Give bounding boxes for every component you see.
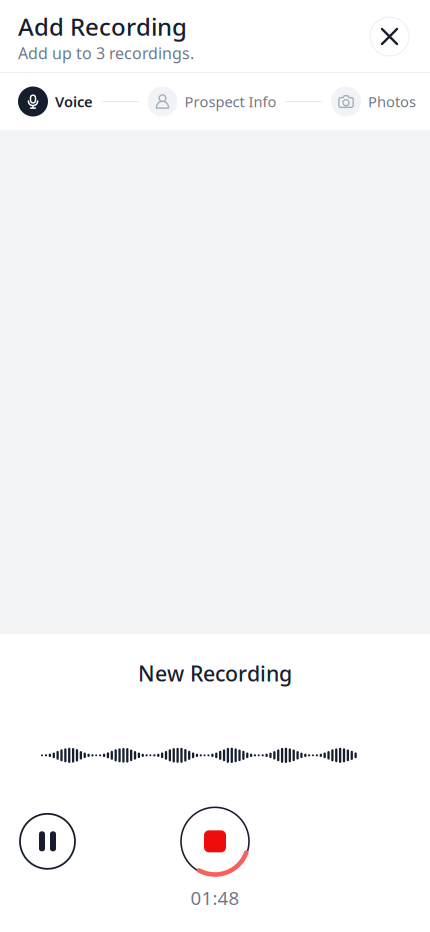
- button[interactable]: Voice: [18, 86, 93, 116]
- button[interactable]: Stop recording: [181, 807, 249, 875]
- staticText: 01:48: [190, 885, 239, 910]
- button[interactable]: Photos: [331, 86, 416, 116]
- staticText: Voice: [55, 92, 93, 111]
- button[interactable]: Pause: [20, 814, 75, 869]
- button[interactable]: Prospect Info: [147, 86, 276, 116]
- button[interactable]: Close: [370, 17, 409, 56]
- staticText: Prospect Info: [184, 92, 276, 111]
- staticText: Add Recording: [18, 10, 187, 42]
- staticText: Photos: [368, 92, 416, 111]
- staticText: Add up to 3 recordings.: [18, 42, 194, 63]
- staticText: New Recording: [138, 659, 292, 687]
